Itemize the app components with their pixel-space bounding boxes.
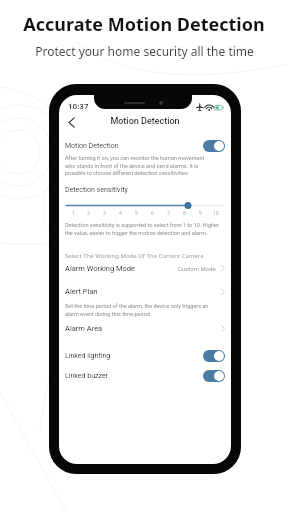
button[interactable]: Back	[62, 113, 80, 131]
staticText: Linked buzzer	[65, 372, 108, 380]
staticText: 10	[213, 210, 219, 216]
staticText: 5	[135, 210, 138, 216]
staticText: Detection sensitivity is supported to se…	[65, 222, 221, 236]
staticText: 8	[183, 210, 186, 216]
staticText: 1	[72, 210, 75, 216]
staticText: Alert Plan	[65, 287, 98, 296]
staticText: Alarm Area	[65, 324, 103, 333]
button[interactable]: Linked buzzer	[59, 369, 231, 383]
staticText: 10:37	[68, 102, 89, 111]
staticText: 3	[103, 210, 106, 216]
staticText: 4	[119, 210, 122, 216]
button[interactable]: Alert Plan	[59, 285, 231, 298]
button[interactable]: Alarm Area	[59, 322, 231, 335]
staticText: Select The Working Mode Of The Current C…	[65, 252, 204, 260]
staticText: 2	[87, 210, 90, 216]
staticText: Protect your home security all the time	[35, 43, 254, 59]
staticText: Linked lighting	[65, 352, 111, 360]
staticText: Accurate Motion Detection	[23, 12, 265, 37]
staticText: Set the time period of the alarm, the de…	[65, 303, 215, 317]
staticText: Motion Detection	[65, 142, 119, 150]
button[interactable]: Linked lighting	[59, 349, 231, 363]
staticText: Alarm Working Mode	[65, 264, 136, 273]
staticText: Detection sensitivity	[65, 186, 128, 194]
staticText: Custom Mode	[178, 265, 216, 272]
staticText: Motion Detection	[59, 116, 231, 127]
staticText: 6	[151, 210, 154, 216]
staticText: 9	[199, 210, 202, 216]
staticText: 7	[167, 210, 170, 216]
button[interactable]: Alarm Working Mode	[59, 262, 231, 275]
button[interactable]: Motion Detection	[59, 139, 231, 153]
staticText: After turning it on, you can monitor the…	[65, 155, 211, 176]
